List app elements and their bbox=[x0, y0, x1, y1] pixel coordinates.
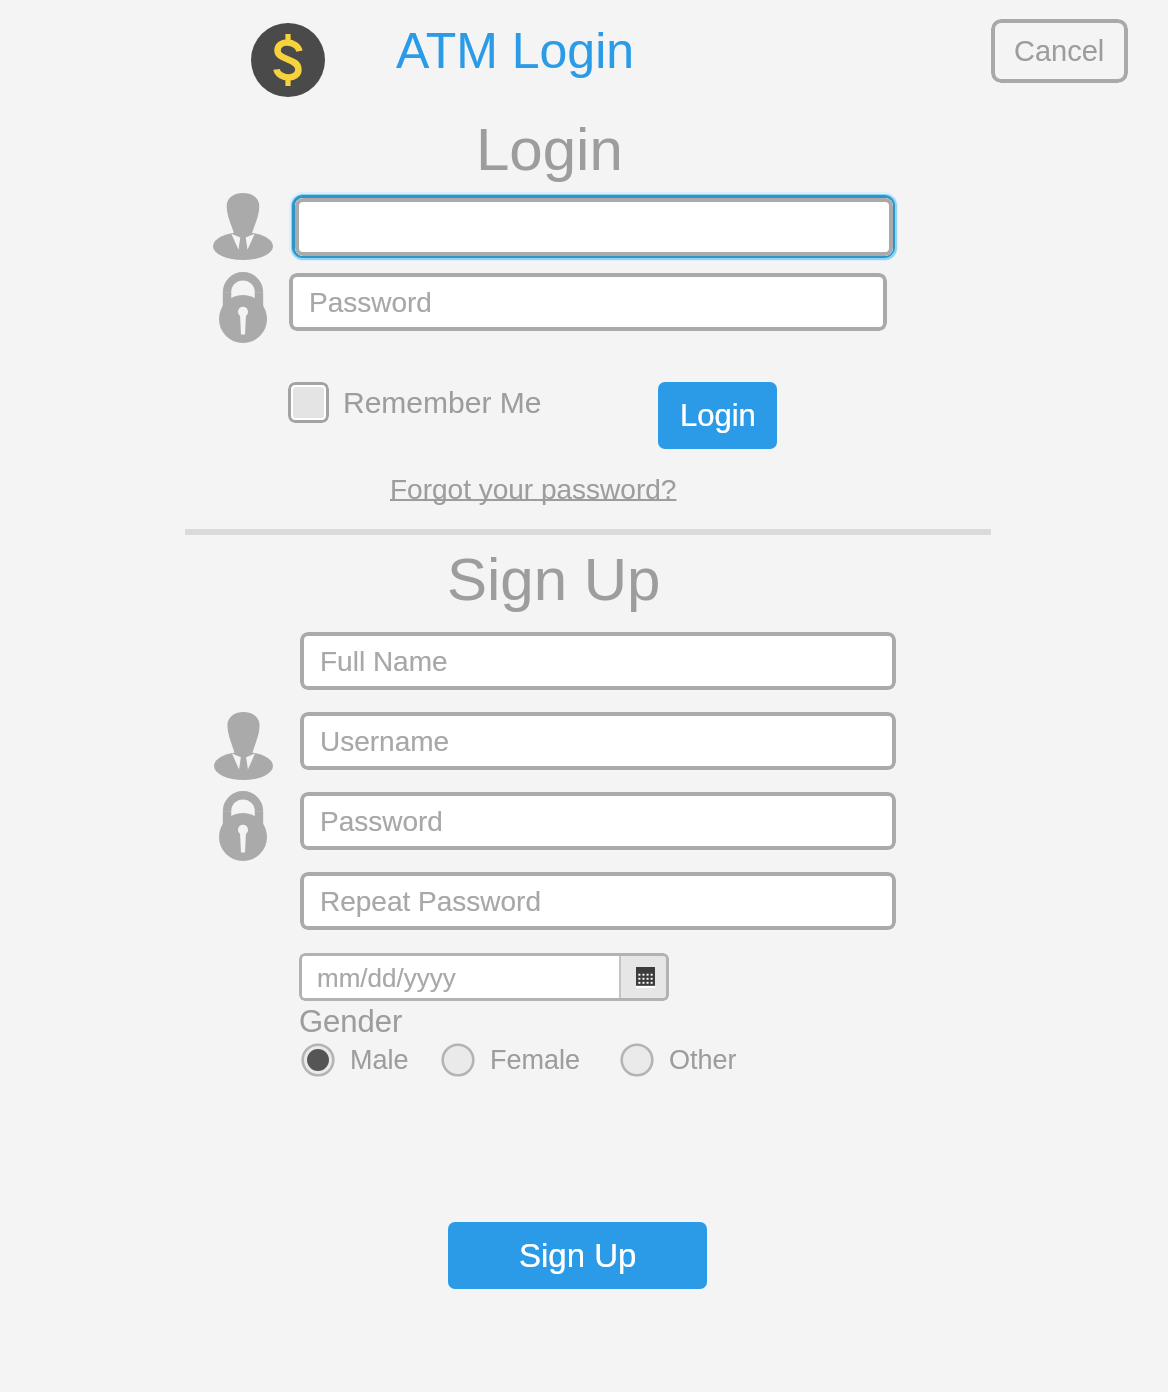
button[interactable]: Remember Me bbox=[288, 382, 542, 423]
staticText: Cancel bbox=[1014, 35, 1105, 67]
button[interactable]: mm/dd/yyyy bbox=[299, 953, 619, 1001]
staticText: mm/dd/yyyy bbox=[317, 963, 456, 992]
button[interactable]: ATM logo bbox=[251, 23, 325, 97]
button[interactable]: Forgot your password? bbox=[390, 474, 677, 505]
staticText: Male bbox=[350, 1045, 409, 1075]
button[interactable]: Full Name bbox=[300, 632, 896, 690]
button[interactable]: Password bbox=[300, 792, 896, 850]
staticText: Password bbox=[309, 287, 432, 318]
staticText: Login bbox=[680, 398, 756, 433]
button[interactable]: Pick date bbox=[621, 953, 669, 1001]
button[interactable]: Sign Up bbox=[448, 1222, 707, 1289]
button[interactable]: Repeat Password bbox=[300, 872, 896, 930]
staticText: Sign Up bbox=[447, 546, 661, 613]
staticText: Sign Up bbox=[519, 1237, 637, 1274]
staticText: Login bbox=[476, 116, 623, 183]
staticText: Gender bbox=[299, 1004, 403, 1039]
button[interactable] bbox=[295, 198, 893, 256]
button[interactable]: Other bbox=[619, 1042, 737, 1078]
staticText: ATM Login bbox=[396, 23, 635, 79]
button[interactable]: Password bbox=[289, 273, 887, 331]
button[interactable]: Cancel bbox=[991, 19, 1128, 83]
button[interactable]: Username bbox=[300, 712, 896, 770]
staticText: Username bbox=[320, 726, 450, 757]
staticText: Repeat Password bbox=[320, 886, 542, 917]
staticText: Remember Me bbox=[343, 386, 542, 420]
button[interactable]: Female bbox=[440, 1042, 581, 1078]
button[interactable]: Login bbox=[658, 382, 777, 449]
staticText: Full Name bbox=[320, 646, 448, 677]
staticText: Other bbox=[669, 1045, 737, 1075]
staticText: Password bbox=[320, 806, 443, 837]
button[interactable]: Male bbox=[300, 1042, 409, 1078]
staticText: Female bbox=[490, 1045, 581, 1075]
